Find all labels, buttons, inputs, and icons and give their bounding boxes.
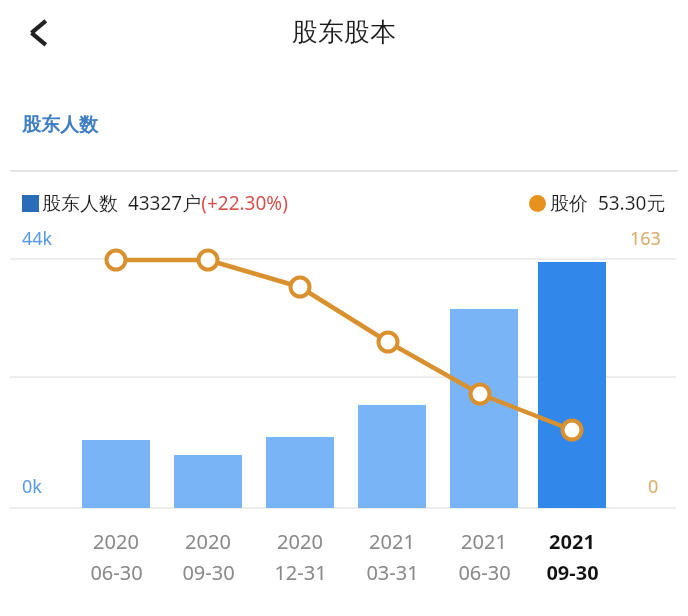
staticText: 股东人数 43327户(+22.30%) xyxy=(42,190,288,216)
button[interactable]: 2021 xyxy=(527,528,617,586)
staticText: 2020 xyxy=(185,528,231,555)
staticText: 2021 xyxy=(549,528,595,555)
staticText: 股价 53.30元 xyxy=(550,190,666,216)
staticText: 2021 xyxy=(369,528,415,555)
button[interactable]: Back xyxy=(8,4,68,64)
staticText: 2020 xyxy=(277,528,323,555)
button[interactable]: 股价 53.30元 xyxy=(529,190,666,216)
staticText: 09-30 xyxy=(182,559,235,586)
staticText: 06-30 xyxy=(458,559,511,586)
button[interactable]: 2020 xyxy=(163,528,253,586)
staticText: 2021 xyxy=(461,528,507,555)
staticText: 2020 xyxy=(93,528,139,555)
button[interactable]: 2021 xyxy=(439,528,529,586)
staticText: 44k xyxy=(22,226,53,251)
button[interactable]: 2021 xyxy=(347,528,437,586)
staticText: 0 xyxy=(648,474,659,499)
button[interactable]: 股东人数 43327户(+22.30%) xyxy=(22,190,288,216)
staticText: 06-30 xyxy=(90,559,143,586)
staticText: 0k xyxy=(22,474,42,499)
button[interactable]: 2020 xyxy=(71,528,161,586)
button[interactable]: 2020 xyxy=(255,528,345,586)
staticText: 股东股本 xyxy=(292,16,396,49)
staticText: 163 xyxy=(630,226,661,251)
staticText: 股东人数 xyxy=(22,113,98,137)
staticText: 03-31 xyxy=(366,559,419,586)
staticText: 09-30 xyxy=(546,559,599,586)
staticText: 12-31 xyxy=(274,559,327,586)
